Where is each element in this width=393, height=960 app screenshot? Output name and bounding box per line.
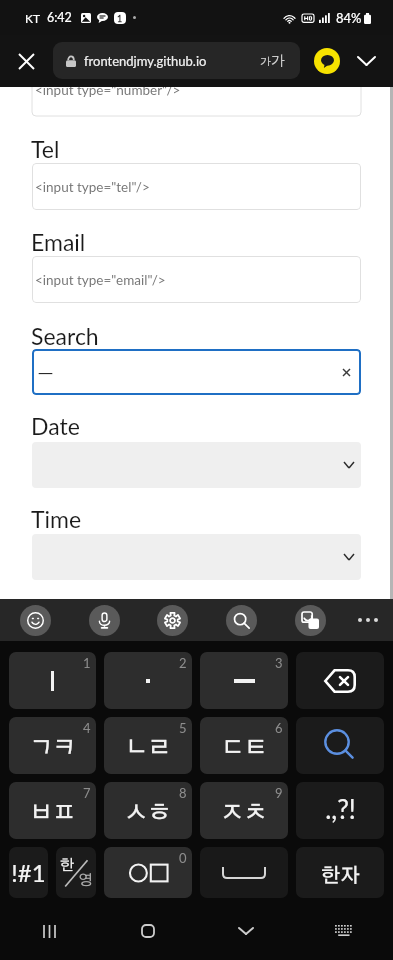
staticText: Tel	[31, 135, 60, 163]
staticText: ㅈㅊ	[221, 802, 267, 825]
staticText: 한	[60, 858, 75, 873]
staticText: 가	[260, 54, 271, 68]
staticText: KT	[25, 11, 41, 25]
button[interactable]: .,?!	[296, 782, 384, 839]
staticText: <input type="email"/>	[35, 272, 166, 288]
staticText: Date	[31, 412, 80, 440]
button[interactable]: ㄷㅌ	[200, 717, 288, 774]
staticText: 7	[83, 785, 91, 801]
staticText: 4	[83, 720, 91, 736]
staticText: 가	[271, 52, 285, 70]
button[interactable]	[32, 442, 361, 488]
button[interactable]: Hanja	[296, 847, 384, 898]
button[interactable]: Keyboard settings	[149, 599, 195, 641]
staticText: 영	[78, 873, 93, 888]
button[interactable]: Voice input	[81, 599, 127, 641]
button[interactable]	[32, 256, 361, 303]
button[interactable]: Clear search	[337, 363, 355, 381]
staticText: 3	[275, 655, 283, 671]
staticText: 1	[83, 655, 91, 671]
staticText: frontendjmy.github.io	[84, 53, 207, 69]
button[interactable]: Korean English toggle	[56, 847, 96, 898]
staticText: —	[38, 362, 54, 382]
staticText: !#1	[11, 858, 46, 887]
button[interactable]: ㅣ	[9, 652, 96, 709]
button[interactable]: ㅈㅊ	[200, 782, 288, 839]
button[interactable]: ㅅㅎ	[104, 782, 192, 839]
staticText: 5	[179, 720, 187, 736]
button[interactable]: —	[32, 349, 361, 395]
button[interactable]: ㄱㅋ	[9, 717, 96, 774]
button[interactable]: Consonant key	[104, 847, 192, 898]
staticText: ㄴㄹ	[125, 737, 171, 760]
staticText: 한자	[321, 866, 360, 886]
staticText: 8	[179, 785, 187, 801]
button[interactable]: Home	[99, 902, 197, 960]
button[interactable]: Space	[200, 847, 288, 898]
button[interactable]: Hide keyboard	[197, 902, 295, 960]
button[interactable]	[32, 163, 361, 210]
button[interactable]: Close	[4, 35, 49, 87]
staticText: 9	[275, 785, 283, 801]
staticText: 0	[179, 850, 187, 866]
staticText: ㄷㅌ	[221, 737, 267, 760]
staticText: ㅂㅍ	[30, 802, 76, 825]
staticText: 2	[179, 655, 187, 671]
staticText: ㅅㅎ	[125, 802, 171, 825]
button[interactable]: frontendjmy.github.io	[53, 42, 300, 79]
button[interactable]: ·	[104, 652, 192, 709]
staticText: <input type="number"/>	[35, 87, 181, 98]
button[interactable]: Recent apps	[0, 902, 99, 960]
button[interactable]: Switch keyboard	[295, 902, 393, 960]
button[interactable]: Search	[296, 717, 384, 774]
button[interactable]: ㅡ	[200, 652, 288, 709]
button[interactable]: Search	[218, 599, 264, 641]
button[interactable]: Backspace	[296, 652, 384, 709]
button[interactable]: Expand	[346, 35, 386, 87]
staticText: <input type="tel"/>	[35, 179, 150, 195]
button[interactable]: Emoji	[12, 599, 58, 641]
staticText: 6	[275, 720, 283, 736]
button[interactable]: ㄴㄹ	[104, 717, 192, 774]
button[interactable]: Translate	[287, 599, 333, 641]
staticText: Time	[31, 505, 82, 533]
staticText: 84%	[336, 10, 362, 26]
button[interactable]: More keyboard options	[345, 599, 391, 641]
staticText: ㄱㅋ	[30, 737, 76, 760]
button[interactable]: Account	[306, 35, 348, 87]
staticText: .,?!	[325, 793, 356, 824]
button[interactable]: ㅂㅍ	[9, 782, 96, 839]
button[interactable]	[32, 534, 361, 580]
staticText: 6:42	[47, 10, 72, 25]
staticText: 1	[117, 13, 123, 24]
button[interactable]: !#1	[9, 847, 48, 898]
staticText: Email	[31, 228, 86, 256]
staticText: Search	[31, 322, 99, 350]
